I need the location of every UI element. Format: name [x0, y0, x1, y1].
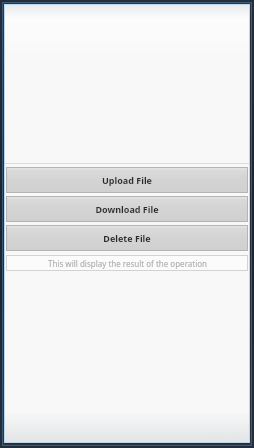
button[interactable]: Upload File — [7, 168, 247, 192]
staticText: Download File — [95, 203, 159, 215]
button[interactable]: This will display the result of the oper… — [6, 255, 248, 271]
staticText: This will display the result of the oper… — [48, 258, 207, 269]
button[interactable]: Download File — [7, 197, 247, 221]
button[interactable]: Delete File — [7, 226, 247, 250]
staticText: Delete File — [103, 232, 151, 244]
staticText: Upload File — [102, 174, 152, 186]
